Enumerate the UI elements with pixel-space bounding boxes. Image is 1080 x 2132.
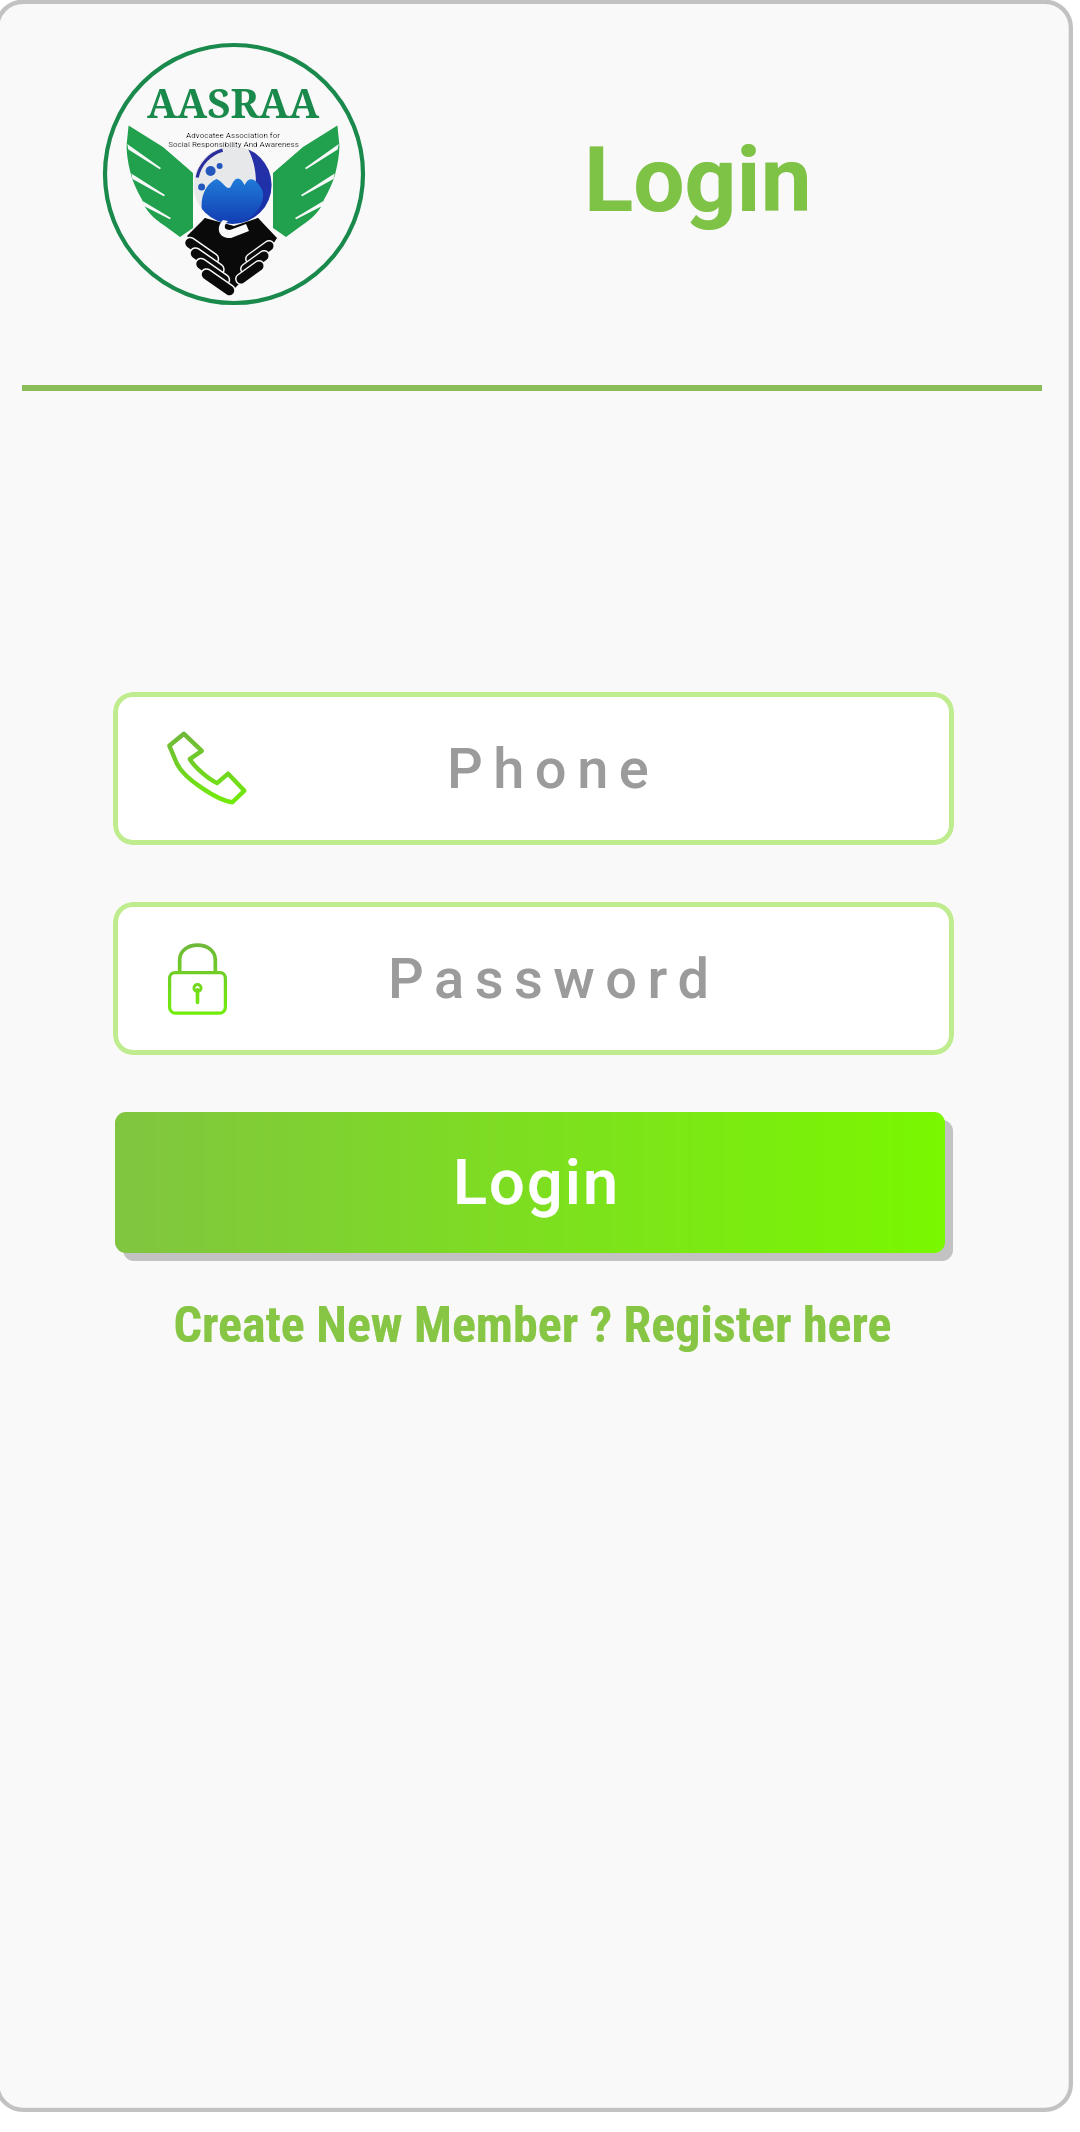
staticText: Password: [388, 946, 720, 1012]
staticText: Advocatee Association for: [186, 131, 280, 140]
staticText: Phone: [447, 736, 660, 802]
button[interactable]: Create New Member ? Register here: [0, 1292, 1072, 1358]
other: Password: [168, 943, 227, 1015]
button[interactable]: Password: [113, 902, 954, 1055]
staticText: Create New Member ? Register here: [173, 1296, 892, 1355]
staticText: AASRAA: [147, 75, 320, 129]
button[interactable]: Phone: [113, 692, 954, 845]
staticText: Social Responsibility And Awareness: [168, 140, 299, 149]
button[interactable]: Login: [115, 1112, 945, 1253]
staticText: Login: [584, 127, 812, 234]
staticText: Login: [453, 1146, 621, 1220]
other: Phone: [168, 732, 246, 805]
